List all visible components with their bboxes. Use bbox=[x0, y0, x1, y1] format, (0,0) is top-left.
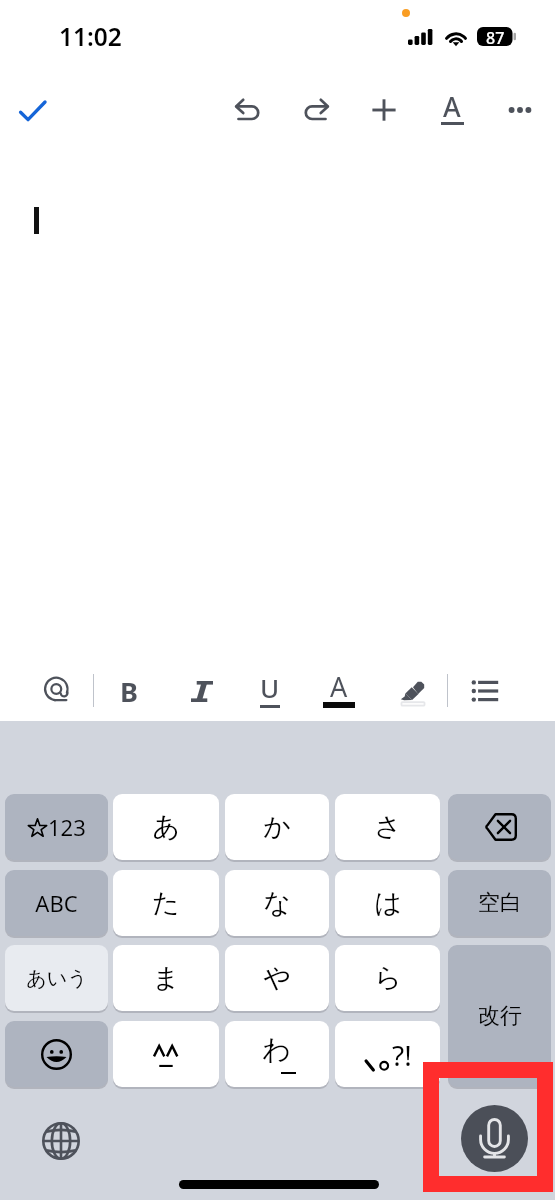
button[interactable]: あいう bbox=[5, 945, 108, 1011]
button[interactable]: Insert bbox=[359, 85, 409, 135]
staticText: 11:02 bbox=[59, 20, 122, 53]
button[interactable]: Redo bbox=[291, 85, 341, 135]
button[interactable]: な bbox=[225, 870, 329, 936]
button[interactable]: Bulleted list bbox=[460, 666, 510, 716]
staticText: あいう bbox=[26, 966, 88, 991]
staticText: は bbox=[374, 886, 402, 920]
staticText: あ bbox=[152, 810, 180, 844]
staticText: 123 bbox=[48, 812, 86, 842]
button[interactable]: Emoji bbox=[5, 1021, 108, 1087]
button[interactable]: wa bbox=[225, 1021, 329, 1087]
button[interactable]: ま bbox=[113, 945, 219, 1011]
button[interactable]: や bbox=[225, 945, 329, 1011]
staticText: ?! bbox=[392, 1036, 412, 1074]
button[interactable]: Undo bbox=[223, 85, 273, 135]
button[interactable]: Bold bbox=[104, 666, 154, 716]
button[interactable]: Italic bbox=[177, 666, 227, 716]
staticText: か bbox=[263, 810, 291, 844]
staticText: U bbox=[260, 670, 280, 704]
staticText: た bbox=[152, 886, 180, 920]
staticText: 87 bbox=[486, 27, 505, 46]
staticText: な bbox=[263, 886, 291, 920]
staticText: B bbox=[120, 673, 138, 710]
staticText: ら bbox=[374, 961, 402, 995]
button[interactable]: Switch keyboard bbox=[36, 1116, 86, 1166]
button[interactable]: Done bbox=[9, 85, 59, 135]
button[interactable]: Mention bbox=[33, 666, 83, 716]
staticText: 空白 bbox=[478, 889, 522, 917]
button[interactable]: Delete bbox=[448, 794, 551, 860]
button[interactable]: は bbox=[335, 870, 440, 936]
staticText: わ bbox=[262, 1032, 291, 1067]
staticText: A bbox=[330, 668, 348, 704]
staticText: さ bbox=[374, 810, 402, 844]
button[interactable]: 123 bbox=[5, 794, 108, 860]
button[interactable]: ら bbox=[335, 945, 440, 1011]
staticText: A bbox=[443, 88, 461, 124]
button[interactable]: た bbox=[113, 870, 219, 936]
staticText: 改行 bbox=[478, 1002, 522, 1030]
button[interactable]: Voice input bbox=[461, 1105, 528, 1172]
button[interactable]: Text colour bbox=[314, 666, 364, 716]
button[interactable]: あ bbox=[113, 794, 219, 860]
button[interactable]: Underline bbox=[245, 666, 295, 716]
staticText: ま bbox=[152, 961, 180, 995]
button[interactable]: ABC bbox=[5, 870, 108, 936]
button[interactable]: Kaomoji bbox=[113, 1021, 219, 1087]
button[interactable]: More options bbox=[495, 85, 545, 135]
staticText: ABC bbox=[35, 888, 78, 918]
button[interactable]: 空白 bbox=[448, 870, 551, 936]
button[interactable]: Punctuation bbox=[335, 1021, 440, 1087]
button[interactable]: Format bbox=[427, 85, 477, 135]
staticText: や bbox=[263, 961, 291, 995]
button[interactable]: か bbox=[225, 794, 329, 860]
button[interactable]: 改行 bbox=[448, 945, 551, 1087]
button[interactable]: さ bbox=[335, 794, 440, 860]
button[interactable]: Highlight bbox=[388, 666, 438, 716]
